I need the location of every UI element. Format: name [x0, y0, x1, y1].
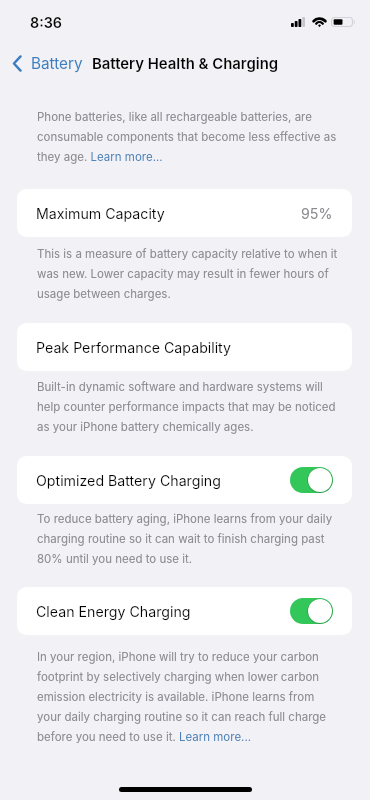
staticText: Phone batteries, like all rechargeable b… [37, 105, 341, 165]
button[interactable]: Maximum Capacity [17, 189, 352, 237]
button[interactable]: Learn more... [92, 150, 163, 166]
button[interactable]: Optimized Battery Charging [17, 456, 352, 504]
button[interactable]: Clean Energy Charging [17, 587, 352, 635]
staticText: This is a measure of battery capacity re… [37, 242, 341, 302]
button[interactable]: Learn more... [181, 730, 251, 746]
button[interactable]: Toggle switch, on [290, 598, 333, 624]
staticText: Clean Energy Charging [36, 603, 191, 620]
button[interactable]: Toggle switch, on [290, 467, 333, 493]
staticText: To reduce battery aging, iPhone learns f… [37, 507, 341, 567]
button[interactable]: Battery [4, 50, 93, 77]
staticText: Maximum Capacity [36, 205, 165, 222]
staticText: Built-in dynamic software and hardware s… [37, 375, 341, 435]
staticText: In your region, iPhone will try to reduc… [37, 645, 341, 745]
staticText: Battery [31, 54, 83, 73]
button[interactable]: Peak Performance Capability [17, 323, 352, 371]
staticText: Optimized Battery Charging [36, 472, 221, 489]
staticText: Battery Health & Charging [92, 55, 279, 73]
staticText: 95% [301, 205, 333, 222]
staticText: Peak Performance Capability [36, 339, 232, 356]
staticText: 8:36 [30, 14, 62, 31]
